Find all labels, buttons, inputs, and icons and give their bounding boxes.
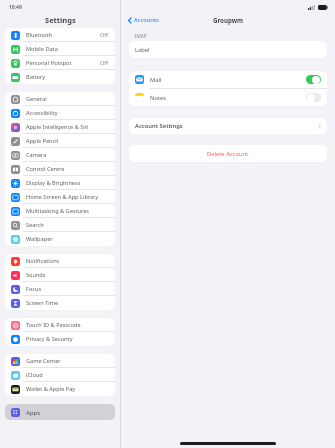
button[interactable]: Control Centre [5, 162, 115, 176]
button[interactable]: Screen Time [5, 296, 115, 310]
staticText: Notes [150, 94, 167, 102]
staticText: Mail [150, 76, 162, 84]
button[interactable]: Bluetooth [5, 28, 115, 42]
staticText: 10:49 [9, 4, 22, 11]
staticText: Search [26, 221, 44, 229]
staticText: General [26, 95, 47, 103]
button[interactable]: Game Center [5, 354, 115, 368]
staticText: Accessibility [26, 109, 58, 117]
staticText: Touch ID & Passcode [26, 321, 81, 329]
button[interactable]: Wallpaper [5, 232, 115, 246]
button[interactable]: Notes toggle [306, 93, 321, 102]
button[interactable]: Battery [5, 70, 115, 84]
button[interactable]: Delete Account [129, 145, 327, 162]
staticText: Notifications [26, 257, 60, 265]
staticText: Apple Intelligence & Siri [26, 123, 89, 131]
staticText: Personal Hotspot [26, 59, 72, 67]
staticText: IMAP [135, 33, 147, 39]
button[interactable]: Notes [129, 89, 327, 106]
button[interactable]: Display & Brightness [5, 176, 115, 190]
staticText: Wallet & Apple Pay [26, 385, 76, 393]
staticText: Apps [26, 409, 41, 417]
staticText: Sounds [26, 271, 46, 279]
button[interactable]: Multitasking & Gestures [5, 204, 115, 218]
button[interactable]: Label [129, 41, 327, 58]
staticText: Screen Time [26, 299, 59, 307]
staticText: Mobile Data [26, 45, 58, 53]
button[interactable]: Home Screen & App Library [5, 190, 115, 204]
button[interactable]: Focus [5, 282, 115, 296]
button[interactable]: Touch ID & Passcode [5, 318, 115, 332]
staticText: Home Screen & App Library [26, 193, 99, 201]
staticText: Off [100, 31, 109, 39]
staticText: Bluetooth [26, 31, 52, 39]
button[interactable]: Search [5, 218, 115, 232]
button[interactable]: Mobile Data [5, 42, 115, 56]
button[interactable]: Accessibility [5, 106, 115, 120]
staticText: Delete Account [207, 150, 249, 158]
button[interactable]: Personal Hotspot [5, 56, 115, 70]
button[interactable]: Apple Pencil [5, 134, 115, 148]
staticText: Battery [26, 73, 46, 81]
staticText: Settings [45, 15, 76, 25]
staticText: Accounts [134, 16, 159, 24]
staticText: Multitasking & Gestures [26, 207, 90, 215]
staticText: Privacy & Security [26, 335, 73, 343]
staticText: Game Center [26, 357, 61, 365]
staticText: Groupwm [213, 16, 244, 24]
button[interactable]: General [5, 92, 115, 106]
button[interactable]: Privacy & Security [5, 332, 115, 346]
staticText: Wallpaper [26, 235, 53, 243]
staticText: Apple Pencil [26, 137, 59, 145]
button[interactable]: iCloud [5, 368, 115, 382]
staticText: iCloud [26, 371, 43, 379]
button[interactable]: Account Settings [129, 118, 327, 134]
button[interactable]: Notifications [5, 254, 115, 268]
button[interactable]: Apple Intelligence & Siri [5, 120, 115, 134]
button[interactable]: Mail [129, 71, 327, 88]
staticText: Display & Brightness [26, 179, 81, 187]
staticText: Camera [26, 151, 47, 159]
button[interactable]: Sounds [5, 268, 115, 282]
button[interactable]: Mail toggle [306, 75, 321, 84]
staticText: Control Centre [26, 165, 65, 173]
staticText: Account Settings [135, 122, 183, 130]
staticText: Off [100, 59, 109, 67]
button[interactable]: Camera [5, 148, 115, 162]
staticText: Focus [26, 285, 42, 293]
staticText: Label [135, 46, 150, 54]
button[interactable]: Apps [5, 404, 115, 420]
button[interactable]: Wallet & Apple Pay [5, 382, 115, 396]
button[interactable]: Accounts [127, 15, 160, 25]
